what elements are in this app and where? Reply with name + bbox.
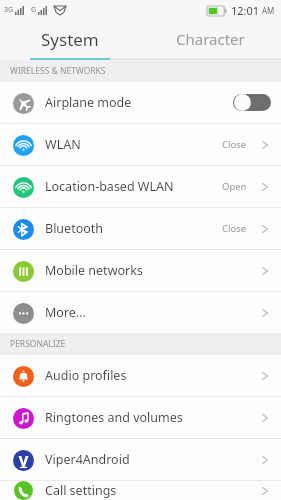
- button[interactable]: Airplane mode: [0, 82, 281, 123]
- staticText: Audio profiles: [45, 367, 257, 384]
- staticText: WIRELESS & NETWORKS: [10, 65, 106, 77]
- staticText: 3G: [4, 5, 14, 15]
- staticText: Character: [176, 29, 245, 49]
- staticText: System: [41, 28, 99, 51]
- staticText: Close: [222, 138, 247, 151]
- button[interactable]: System: [0, 20, 140, 58]
- staticText: AM: [262, 5, 275, 16]
- button[interactable]: Location-based WLAN: [0, 166, 281, 207]
- other: Open: [257, 138, 271, 152]
- staticText: 12:01: [231, 3, 260, 18]
- other: Open: [257, 484, 271, 498]
- staticText: PERSONALIZE: [10, 338, 66, 350]
- staticText: Bluetooth: [45, 220, 222, 237]
- staticText: Mobile networks: [45, 262, 257, 279]
- staticText: Airplane mode: [45, 94, 233, 111]
- button[interactable]: WLAN: [0, 124, 281, 165]
- other: Open: [257, 180, 271, 194]
- button[interactable]: Bluetooth: [0, 208, 281, 249]
- button[interactable]: Mobile networks: [0, 250, 281, 291]
- staticText: Viper4Android: [45, 451, 257, 468]
- button[interactable]: Audio profiles: [0, 355, 281, 396]
- staticText: More...: [45, 304, 257, 321]
- other: Open: [257, 222, 271, 236]
- other: Open: [257, 453, 271, 467]
- button[interactable]: Call settings: [0, 481, 281, 500]
- staticText: Location-based WLAN: [45, 178, 222, 195]
- other: Open: [257, 369, 271, 383]
- button[interactable]: Ringtones and volumes: [0, 397, 281, 438]
- button[interactable]: More...: [0, 292, 281, 333]
- staticText: Ringtones and volumes: [45, 409, 257, 426]
- other: Open: [257, 306, 271, 320]
- button[interactable]: Viper4Android: [0, 439, 281, 480]
- staticText: Close: [222, 222, 247, 235]
- staticText: Call settings: [45, 482, 257, 499]
- staticText: Open: [222, 180, 247, 193]
- staticText: WLAN: [45, 136, 222, 153]
- button[interactable]: Character: [140, 20, 281, 58]
- other: Open: [257, 411, 271, 425]
- button[interactable]: Airplane mode toggle: [233, 93, 271, 112]
- other: Open: [257, 264, 271, 278]
- staticText: G: [31, 5, 37, 15]
